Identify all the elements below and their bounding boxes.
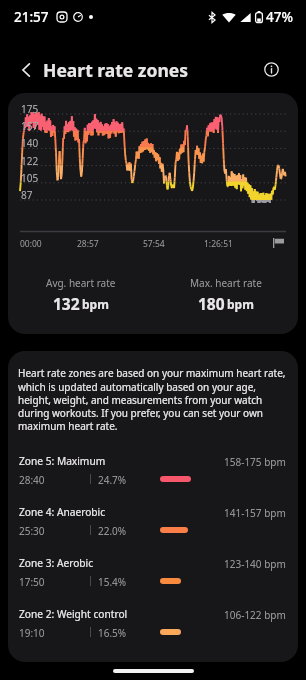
staticText: 175	[21, 102, 39, 116]
staticText: Zone 3: Aerobic	[19, 556, 94, 570]
staticText: 28:57	[77, 238, 99, 250]
staticText: Zone 5: Maximum	[19, 454, 106, 468]
staticText: 15.4%	[98, 575, 127, 589]
staticText: 87	[21, 188, 33, 202]
staticText: 141-157 bpm	[224, 506, 286, 520]
staticText: Max. heart rate	[190, 276, 262, 290]
staticText: bpm	[82, 296, 109, 312]
staticText: 21:57	[14, 8, 49, 26]
staticText: 22.0%	[98, 524, 127, 538]
staticText: 106-122 bpm	[224, 608, 286, 622]
staticText: 157	[21, 119, 39, 133]
staticText: 24.7%	[98, 473, 127, 487]
button[interactable]: Zone 4: Anaerobic	[8, 504, 298, 555]
staticText: 17:50	[19, 575, 45, 589]
button[interactable]: Back	[12, 56, 40, 84]
button[interactable]: Zone 5: Maximum	[8, 453, 298, 504]
staticText: 132	[53, 293, 80, 314]
staticText: 00:00	[20, 238, 42, 250]
staticText: 123-140 bpm	[224, 557, 286, 571]
staticText: 57:54	[143, 238, 165, 250]
staticText: 158-175 bpm	[224, 455, 286, 469]
staticText: 122	[21, 154, 39, 168]
staticText: 1:26:51	[204, 238, 233, 250]
staticText: Zone 4: Anaerobic	[19, 505, 106, 519]
staticText: 28:40	[19, 473, 45, 487]
button[interactable]: Zone 3: Aerobic	[8, 555, 298, 606]
button[interactable]: Zone 2: Weight control	[8, 606, 298, 657]
staticText: 180	[198, 293, 225, 314]
staticText: 47%	[266, 8, 293, 26]
staticText: 16.5%	[98, 626, 127, 640]
staticText: 19:10	[19, 626, 45, 640]
button[interactable]: Information	[259, 57, 283, 81]
staticText: Heart rate zones	[43, 58, 189, 82]
staticText: 105	[21, 171, 39, 185]
staticText: 140	[21, 136, 39, 150]
staticText: Heart rate zones are based on your maxim…	[18, 366, 290, 432]
staticText: bpm	[227, 296, 254, 312]
staticText: 25:30	[19, 524, 45, 538]
staticText: Zone 2: Weight control	[19, 607, 128, 621]
staticText: Avg. heart rate	[46, 276, 116, 290]
